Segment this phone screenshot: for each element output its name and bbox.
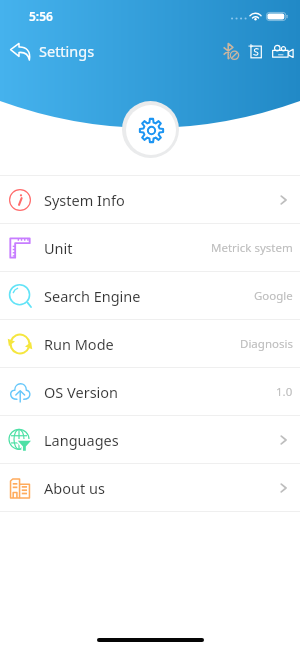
button[interactable]: About us	[0, 464, 300, 511]
button[interactable]: Bluetooth off	[217, 34, 243, 68]
staticText: 5:56	[29, 8, 53, 24]
staticText: Search Engine	[44, 286, 141, 306]
button[interactable]: Unit	[0, 224, 300, 271]
button[interactable]: OS Version	[0, 368, 300, 415]
staticText: Settings	[39, 41, 95, 61]
staticText: About us	[44, 478, 105, 498]
staticText: Run Mode	[44, 334, 114, 354]
button[interactable]: Run Mode	[0, 320, 300, 367]
button[interactable]: Settings	[0, 41, 105, 61]
staticText: Diagnosis	[240, 336, 293, 352]
staticText: System Info	[44, 190, 125, 210]
button[interactable]: System Info	[0, 176, 300, 223]
staticText: Unit	[44, 238, 73, 258]
staticText: Languages	[44, 430, 119, 450]
button[interactable]: Screenshot	[243, 34, 269, 68]
button[interactable]: Search Engine	[0, 272, 300, 319]
staticText: Google	[254, 288, 293, 304]
staticText: Metrick system	[211, 240, 293, 256]
staticText: 1.0	[276, 384, 293, 400]
button[interactable]: Languages	[0, 416, 300, 463]
staticText: OS Version	[44, 382, 119, 402]
button[interactable]: Record video	[269, 34, 297, 68]
